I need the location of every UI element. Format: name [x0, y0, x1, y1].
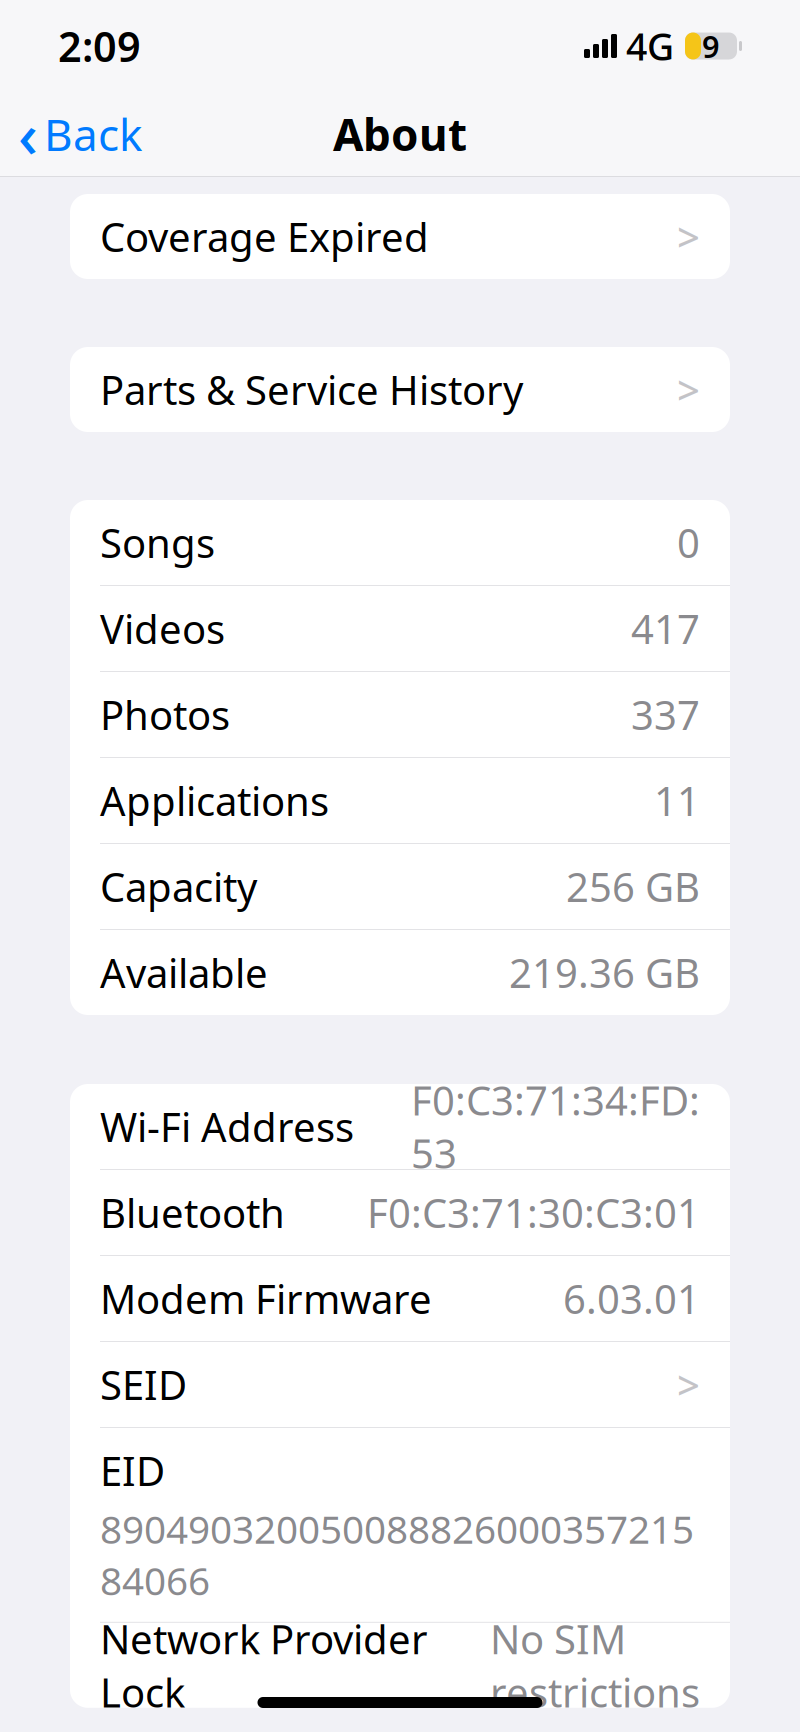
staticText: Videos: [100, 602, 225, 655]
staticText: 0: [677, 516, 700, 569]
staticText: Wi-Fi Address: [100, 1100, 354, 1153]
staticText: Songs: [100, 516, 215, 569]
staticText: Available: [100, 946, 268, 999]
staticText: Photos: [100, 688, 230, 741]
staticText: F0:C3:71:30:C3:01: [367, 1186, 700, 1239]
staticText: Coverage Expired: [100, 210, 429, 263]
staticText: 9: [702, 26, 720, 66]
staticText: 4G: [626, 21, 674, 71]
staticText: >: [677, 210, 700, 263]
staticText: Parts & Service History: [100, 363, 523, 416]
button[interactable]: Coverage Expired: [70, 194, 730, 279]
staticText: 256 GB: [566, 860, 700, 913]
staticText: 417: [631, 602, 700, 655]
staticText: F0:C3:71:34:FD:53: [411, 1073, 700, 1180]
staticText: ‹: [18, 93, 38, 175]
staticText: 6.03.01: [563, 1272, 700, 1325]
staticText: Bluetooth: [100, 1186, 285, 1239]
button[interactable]: ‹: [0, 99, 160, 169]
staticText: Applications: [100, 774, 329, 827]
staticText: 2:09: [58, 19, 141, 73]
staticText: Back: [44, 105, 142, 163]
staticText: >: [677, 363, 700, 416]
staticText: Network Provider Lock: [100, 1612, 428, 1718]
button[interactable]: Parts & Service History: [70, 347, 730, 432]
staticText: SEID: [100, 1358, 187, 1411]
staticText: No SIM restrictions: [490, 1612, 700, 1718]
button[interactable]: SEID: [70, 1342, 730, 1427]
staticText: 219.36 GB: [509, 946, 700, 999]
staticText: Modem Firmware: [100, 1272, 432, 1325]
staticText: Capacity: [100, 860, 257, 913]
staticText: 89049032005008882600035721584066: [100, 1503, 694, 1606]
staticText: 337: [631, 688, 700, 741]
staticText: EID: [100, 1444, 165, 1497]
staticText: >: [677, 1358, 700, 1411]
staticText: About: [333, 105, 467, 163]
staticText: 11: [654, 774, 700, 827]
